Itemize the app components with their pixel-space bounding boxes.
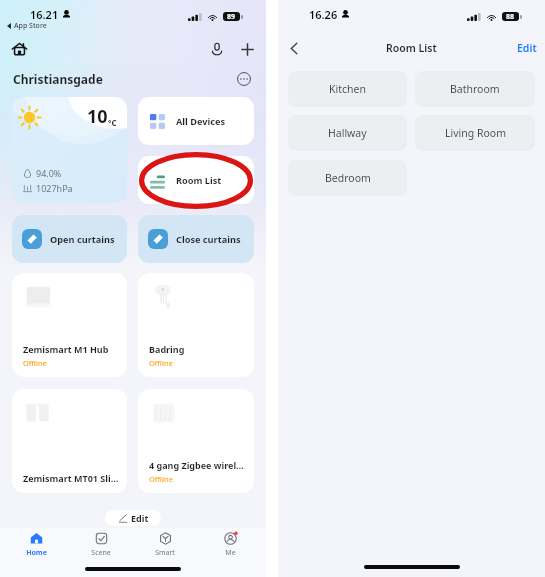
button[interactable]: Add: [236, 38, 258, 60]
staticText: Room List: [176, 174, 222, 187]
button[interactable]: Kitchen: [288, 71, 407, 107]
staticText: Badring: [149, 343, 185, 355]
staticText: Offline: [149, 358, 173, 368]
button[interactable]: Living Room: [415, 115, 535, 151]
staticText: Home: [26, 548, 47, 558]
button[interactable]: Bathroom: [415, 71, 535, 107]
button[interactable]: Zemismart MT01 Sli…: [12, 389, 127, 493]
button[interactable]: Smart: [137, 532, 193, 558]
staticText: 89: [227, 12, 236, 21]
staticText: Edit: [517, 41, 537, 55]
button[interactable]: Edit: [517, 41, 537, 55]
button[interactable]: Back: [282, 36, 306, 60]
button[interactable]: Room List: [138, 156, 254, 204]
button[interactable]: Scene: [73, 532, 129, 558]
staticText: Living Room: [445, 126, 506, 140]
button[interactable]: 4 gang Zigbee wirel…: [138, 389, 254, 493]
staticText: All Devices: [176, 115, 226, 128]
staticText: Bathroom: [450, 82, 500, 96]
button[interactable]: Close curtains: [138, 215, 254, 263]
staticText: Zemismart M1 Hub: [23, 343, 109, 355]
button[interactable]: 10: [12, 97, 127, 203]
button[interactable]: All Devices: [138, 97, 254, 145]
staticText: Room List: [386, 41, 437, 55]
staticText: 16.21: [30, 7, 59, 22]
staticText: 94.0%: [36, 167, 62, 179]
button[interactable]: More options: [234, 69, 254, 89]
button[interactable]: Home: [8, 532, 64, 558]
staticText: 16.26: [309, 7, 338, 22]
button[interactable]: Home: [7, 37, 31, 61]
button[interactable]: Badring: [138, 273, 254, 377]
button[interactable]: Edit: [105, 510, 161, 526]
staticText: Close curtains: [176, 233, 241, 246]
staticText: Hallway: [328, 126, 367, 140]
staticText: 4 gang Zigbee wirel…: [149, 459, 244, 471]
staticText: Smart: [155, 548, 175, 558]
button[interactable]: Hallway: [288, 115, 407, 151]
button[interactable]: Open curtains: [12, 215, 127, 263]
staticText: Me: [225, 548, 236, 558]
staticText: Scene: [91, 548, 111, 558]
staticText: 10: [87, 104, 108, 129]
staticText: Kitchen: [329, 82, 366, 96]
staticText: Bedroom: [325, 171, 371, 185]
staticText: Christiansgade: [13, 71, 103, 87]
button[interactable]: Bedroom: [288, 160, 407, 196]
button[interactable]: Zemismart M1 Hub: [12, 273, 127, 377]
staticText: Zemismart MT01 Sli…: [23, 472, 119, 484]
staticText: Offline: [23, 358, 47, 368]
staticText: App Store: [14, 21, 47, 31]
button[interactable]: Voice: [206, 38, 228, 60]
staticText: 88: [506, 12, 515, 21]
staticText: Edit: [131, 512, 149, 524]
staticText: Open curtains: [50, 233, 115, 246]
staticText: °C: [108, 117, 117, 128]
staticText: Offline: [149, 474, 173, 484]
staticText: 1027hPa: [36, 182, 73, 194]
button[interactable]: Me: [202, 532, 258, 558]
